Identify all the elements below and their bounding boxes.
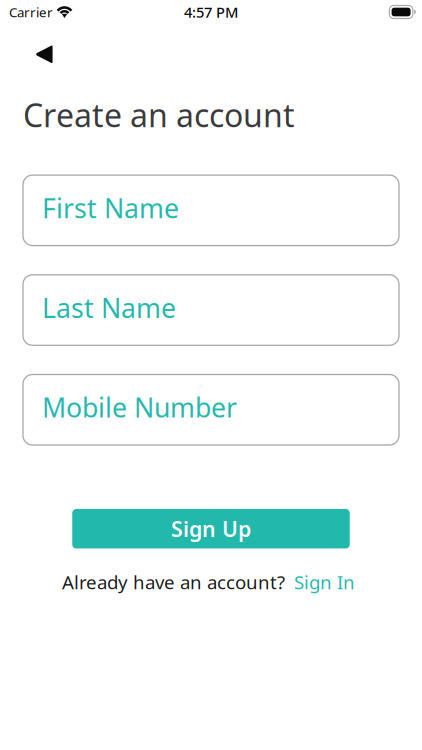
staticText: Carrier <box>9 3 53 21</box>
staticText: Create an account <box>23 94 295 136</box>
button[interactable]: Sign In <box>285 569 355 594</box>
staticText: Already have an account? <box>62 569 285 594</box>
staticText: Mobile Number <box>42 389 237 425</box>
button[interactable]: Sign Up <box>72 509 350 548</box>
button[interactable]: Mobile Number <box>23 374 399 445</box>
staticText: Sign In <box>294 569 355 594</box>
staticText: First Name <box>42 190 179 225</box>
button[interactable]: Last Name <box>23 275 399 345</box>
staticText: 4:57 PM <box>184 2 238 22</box>
staticText: Last Name <box>42 290 176 325</box>
staticText: Sign Up <box>171 515 251 543</box>
button[interactable]: Back <box>25 35 69 74</box>
button[interactable]: First Name <box>23 175 399 246</box>
